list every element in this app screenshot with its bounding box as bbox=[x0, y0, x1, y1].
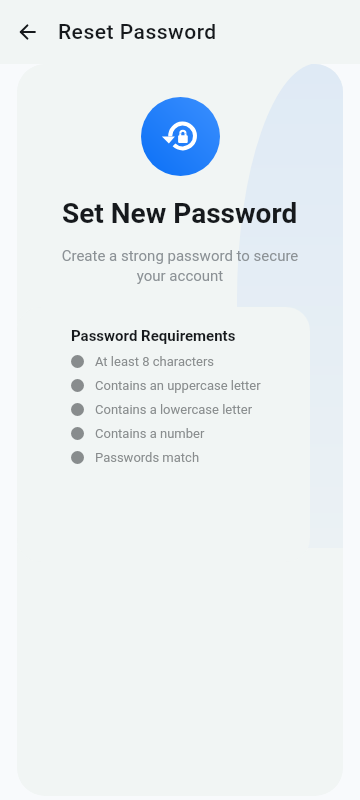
staticText: Passwords match bbox=[95, 450, 200, 465]
button[interactable]: Contains an uppercase letter bbox=[71, 373, 261, 397]
staticText: Create a strong password to secure your … bbox=[57, 247, 303, 284]
staticText: At least 8 characters bbox=[95, 354, 215, 369]
button[interactable]: Contains a lowercase letter bbox=[71, 397, 253, 421]
staticText: Set New Password bbox=[62, 197, 298, 230]
staticText: Password Requirements bbox=[71, 327, 236, 345]
staticText: Reset Password bbox=[58, 20, 217, 45]
staticText: Contains a number bbox=[95, 426, 205, 441]
button[interactable]: Back bbox=[4, 8, 52, 56]
button[interactable]: At least 8 characters bbox=[71, 349, 215, 373]
button[interactable]: Contains a number bbox=[71, 421, 205, 445]
staticText: Contains an uppercase letter bbox=[95, 378, 261, 393]
button[interactable]: Passwords match bbox=[71, 445, 200, 469]
staticText: Contains a lowercase letter bbox=[95, 402, 253, 417]
